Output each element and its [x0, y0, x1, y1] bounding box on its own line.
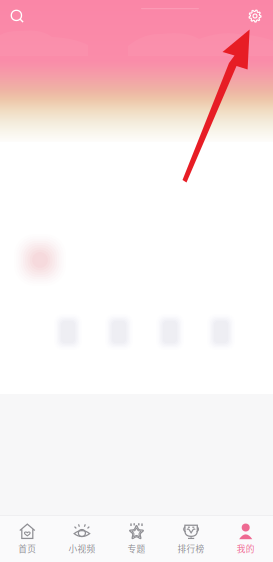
staticText: 排行榜	[178, 542, 205, 555]
staticText: 专题	[127, 542, 145, 555]
button[interactable]: 首页	[0, 516, 55, 562]
button[interactable]: 排行榜	[164, 516, 218, 562]
staticText: 小视频	[68, 542, 95, 555]
button[interactable]: 小视频	[55, 516, 109, 562]
button[interactable]: 专题	[109, 516, 164, 562]
button[interactable]: 我的	[218, 516, 273, 562]
button[interactable]: Settings	[240, 1, 270, 31]
staticText: 首页	[18, 542, 36, 555]
staticText: 我的	[237, 542, 255, 555]
button[interactable]: Search	[2, 1, 32, 31]
